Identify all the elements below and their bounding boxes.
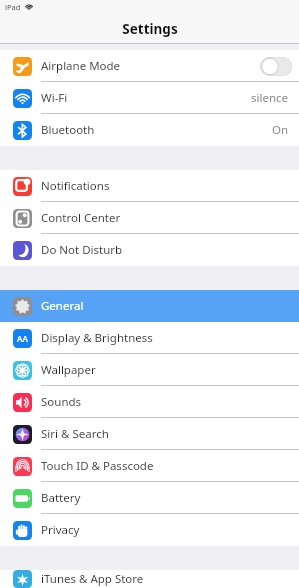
- staticText: General: [41, 298, 84, 314]
- button[interactable]: Touch ID & Passcode: [0, 450, 299, 482]
- staticText: AA: [17, 333, 28, 344]
- staticText: Siri & Search: [41, 426, 109, 442]
- button[interactable]: Wallpaper: [0, 354, 299, 386]
- button[interactable]: Privacy: [0, 514, 299, 546]
- button[interactable]: Wi-Fi: [0, 82, 299, 114]
- button[interactable]: iTunes & App Store: [0, 570, 299, 588]
- button[interactable]: Notifications: [0, 170, 299, 202]
- button[interactable]: General: [0, 290, 299, 322]
- staticText: On: [272, 122, 289, 138]
- staticText: Privacy: [41, 522, 80, 538]
- button[interactable]: Siri & Search: [0, 418, 299, 450]
- staticText: Do Not Disturb: [41, 242, 123, 258]
- button[interactable]: Battery: [0, 482, 299, 514]
- staticText: Display & Brightness: [41, 330, 153, 346]
- staticText: Airplane Mode: [41, 58, 121, 74]
- staticText: Touch ID & Passcode: [41, 458, 154, 474]
- staticText: iTunes & App Store: [41, 571, 144, 587]
- button[interactable]: Do Not Disturb: [0, 234, 299, 266]
- staticText: Sounds: [41, 394, 82, 410]
- staticText: Bluetooth: [41, 122, 95, 138]
- staticText: silence: [251, 90, 289, 106]
- staticText: Wi-Fi: [41, 90, 68, 106]
- staticText: Wallpaper: [41, 362, 96, 378]
- button[interactable]: Bluetooth: [0, 114, 299, 146]
- button[interactable]: Airplane Mode toggle: [260, 57, 292, 76]
- button[interactable]: Sounds: [0, 386, 299, 418]
- staticText: Battery: [41, 490, 81, 506]
- staticText: Settings: [122, 20, 178, 38]
- button[interactable]: AA: [0, 322, 299, 354]
- button[interactable]: Control Center: [0, 202, 299, 234]
- staticText: Notifications: [41, 178, 110, 194]
- staticText: iPad: [5, 2, 21, 12]
- staticText: Control Center: [41, 210, 121, 226]
- button[interactable]: Airplane Mode: [0, 50, 299, 82]
